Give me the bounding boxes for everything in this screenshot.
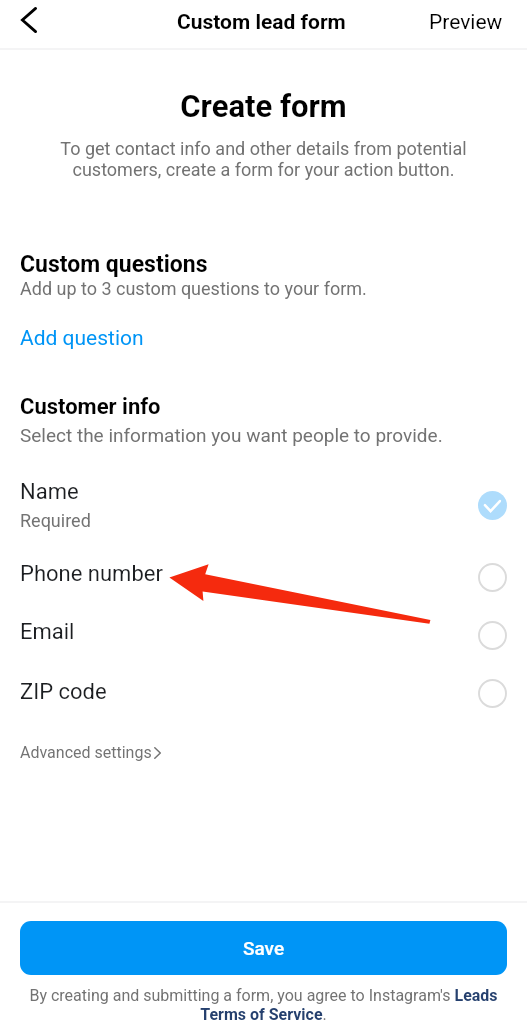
button[interactable]: Save <box>20 921 507 975</box>
staticText: Custom lead form <box>177 10 346 35</box>
staticText: Create form <box>0 88 527 124</box>
staticText: By creating and submitting a form, you a… <box>22 986 505 1024</box>
staticText: Name <box>20 479 79 505</box>
button[interactable] <box>0 548 527 606</box>
staticText: Email <box>20 619 75 645</box>
button[interactable]: Back <box>0 0 56 48</box>
staticText: Customer info <box>20 394 161 420</box>
button[interactable]: Add question <box>12 318 152 359</box>
staticText: Select the information you want people t… <box>20 424 443 446</box>
staticText: Add up to 3 custom questions to your for… <box>20 278 367 299</box>
button[interactable] <box>0 476 527 534</box>
staticText: Save <box>243 937 285 959</box>
staticText: Advanced settings <box>20 743 152 762</box>
staticText: Phone number <box>20 561 163 587</box>
staticText: ZIP code <box>20 679 107 705</box>
button[interactable] <box>0 664 527 722</box>
staticText: Custom questions <box>20 251 208 278</box>
staticText: Required <box>20 510 91 531</box>
staticText: To get contact info and other details fr… <box>55 138 472 180</box>
button[interactable]: Advanced settings <box>12 737 169 768</box>
button[interactable]: Preview <box>415 0 527 48</box>
staticText: Preview <box>429 10 503 35</box>
staticText: Add question <box>20 326 144 351</box>
button[interactable] <box>0 606 527 664</box>
